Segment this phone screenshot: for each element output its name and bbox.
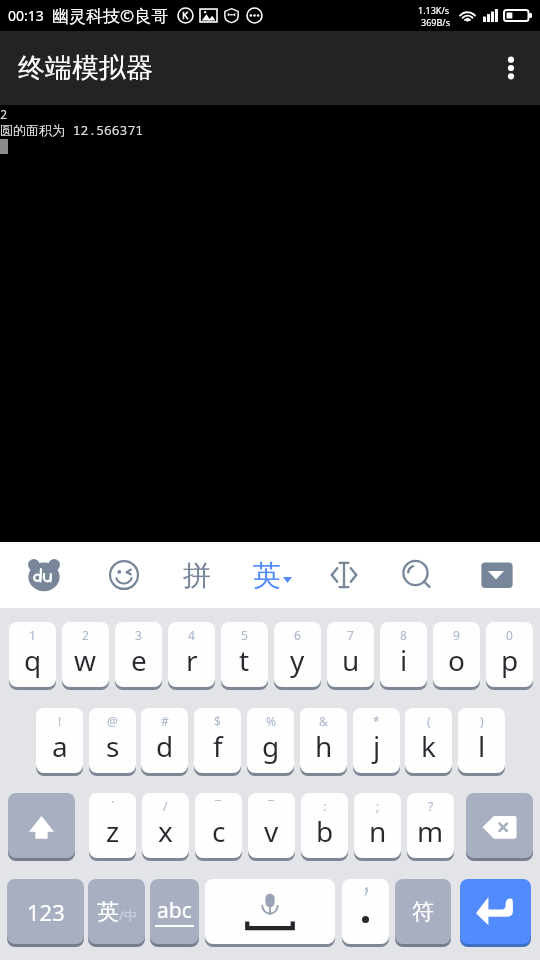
- staticText: d: [156, 727, 174, 765]
- staticText: p: [501, 641, 519, 679]
- button[interactable]: /: [142, 793, 189, 858]
- staticText: ): [480, 713, 484, 729]
- staticText: 123: [27, 897, 65, 927]
- staticText: 1: [29, 627, 36, 643]
- staticText: v: [264, 812, 279, 850]
- button[interactable]: 6: [274, 622, 321, 687]
- button[interactable]: Search: [394, 542, 440, 608]
- button[interactable]: Hide keyboard: [474, 542, 520, 608]
- staticText: @: [107, 713, 118, 729]
- staticText: 幽灵科技©良哥: [52, 4, 169, 27]
- staticText: 369B/s: [421, 16, 450, 28]
- button[interactable]: #: [141, 708, 188, 773]
- button[interactable]: @: [89, 708, 136, 773]
- button[interactable]: ): [458, 708, 505, 773]
- staticText: 终端模拟器: [18, 51, 153, 85]
- button[interactable]: 8: [380, 622, 427, 687]
- staticText: 1.13K/s: [418, 4, 450, 16]
- staticText: 英: [97, 898, 119, 926]
- button[interactable]: 符: [395, 879, 451, 944]
- staticText: r: [186, 641, 198, 679]
- staticText: m: [417, 812, 444, 850]
- staticText: x: [158, 812, 173, 850]
- staticText: b: [316, 812, 334, 850]
- button[interactable]: %: [247, 708, 294, 773]
- button[interactable]: 4: [168, 622, 215, 687]
- staticText: ?: [428, 798, 434, 814]
- button[interactable]: ¯: [195, 793, 242, 858]
- staticText: k: [421, 727, 436, 765]
- staticText: 3: [135, 627, 142, 643]
- staticText: g: [262, 727, 280, 765]
- button[interactable]: Move cursor: [321, 542, 367, 608]
- staticText: 符: [412, 898, 434, 926]
- button[interactable]: Emoji: [101, 542, 147, 608]
- staticText: t: [239, 641, 250, 679]
- staticText: ¯: [215, 798, 222, 814]
- staticText: 0: [506, 627, 513, 643]
- staticText: 7: [347, 627, 354, 643]
- button[interactable]: Enter: [460, 879, 531, 944]
- staticText: c: [212, 812, 226, 850]
- button[interactable]: abc: [150, 879, 199, 944]
- button[interactable]: 5: [221, 622, 268, 687]
- staticText: 5: [241, 627, 248, 643]
- staticText: 9: [453, 627, 460, 643]
- staticText: u: [342, 641, 360, 679]
- staticText: (: [427, 713, 431, 729]
- button[interactable]: $: [194, 708, 241, 773]
- button[interactable]: More options: [489, 46, 533, 90]
- button[interactable]: :: [301, 793, 348, 858]
- button[interactable]: *: [353, 708, 400, 773]
- staticText: 4: [188, 627, 195, 643]
- button[interactable]: Space: [205, 879, 335, 944]
- button[interactable]: Baidu input method: [21, 542, 67, 608]
- button[interactable]: ?: [407, 793, 454, 858]
- staticText: 圆的面积为 12.566371: [0, 121, 144, 139]
- button[interactable]: ´: [89, 793, 136, 858]
- button[interactable]: ;: [354, 793, 401, 858]
- staticText: *: [373, 713, 380, 729]
- staticText: 英: [253, 558, 281, 593]
- button[interactable]: (: [405, 708, 452, 773]
- staticText: !: [58, 713, 62, 729]
- staticText: 拼: [183, 558, 211, 593]
- button[interactable]: 9: [433, 622, 480, 687]
- staticText: y: [290, 641, 305, 679]
- staticText: ´: [111, 798, 115, 814]
- staticText: &: [319, 713, 328, 729]
- staticText: a: [52, 727, 68, 765]
- button[interactable]: 7: [327, 622, 374, 687]
- staticText: abc: [157, 896, 192, 925]
- staticText: z: [106, 812, 120, 850]
- button[interactable]: ¯: [248, 793, 295, 858]
- staticText: n: [369, 812, 387, 850]
- button[interactable]: 英: [88, 879, 145, 944]
- button[interactable]: Shift: [8, 793, 75, 858]
- button[interactable]: 英: [250, 542, 294, 608]
- button[interactable]: 3: [115, 622, 162, 687]
- staticText: #: [161, 713, 169, 729]
- staticText: e: [131, 641, 147, 679]
- staticText: w: [74, 641, 97, 679]
- button[interactable]: Period: [342, 879, 389, 944]
- staticText: q: [24, 641, 42, 679]
- staticText: o: [448, 641, 465, 679]
- staticText: l: [478, 727, 486, 765]
- staticText: 8: [400, 627, 407, 643]
- staticText: $: [214, 713, 221, 729]
- button[interactable]: &: [300, 708, 347, 773]
- staticText: 2: [0, 106, 8, 122]
- staticText: 00:13: [8, 6, 44, 25]
- button[interactable]: 1: [9, 622, 56, 687]
- button[interactable]: 0: [486, 622, 533, 687]
- button[interactable]: 123: [7, 879, 84, 944]
- staticText: i: [400, 641, 408, 679]
- button[interactable]: 2: [62, 622, 109, 687]
- staticText: ;: [376, 798, 380, 814]
- staticText: h: [315, 727, 333, 765]
- staticText: /: [163, 798, 168, 814]
- button[interactable]: !: [36, 708, 83, 773]
- button[interactable]: 拼: [174, 542, 220, 608]
- button[interactable]: Backspace: [466, 793, 533, 858]
